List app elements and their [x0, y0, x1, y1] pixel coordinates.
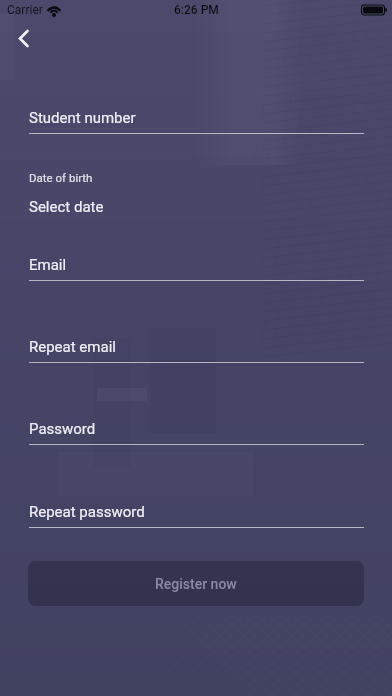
button[interactable]: Password: [29, 414, 364, 448]
staticText: Repeat email: [29, 338, 116, 356]
staticText: Carrier: [7, 3, 43, 17]
button[interactable]: Repeat email: [29, 332, 364, 366]
staticText: Repeat password: [29, 503, 145, 521]
button[interactable]: Repeat password: [29, 497, 364, 531]
button[interactable]: Register now: [28, 561, 364, 606]
button[interactable]: Student number: [29, 103, 364, 137]
staticText: Date of birth: [29, 171, 93, 184]
button[interactable]: [10, 24, 40, 54]
staticText: Email: [29, 256, 67, 274]
staticText: 6:26 PM: [174, 3, 219, 17]
staticText: Password: [29, 420, 96, 438]
staticText: Student number: [29, 109, 136, 127]
button[interactable]: Email: [29, 250, 364, 284]
button[interactable]: Date of birth: [29, 168, 364, 218]
staticText: Register now: [155, 576, 237, 592]
staticText: Select date: [29, 198, 104, 216]
